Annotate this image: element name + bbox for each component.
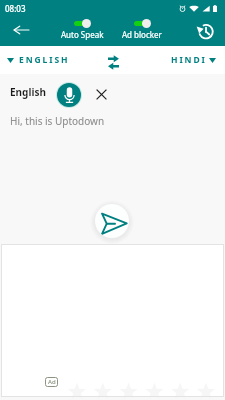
staticText: Auto Speak bbox=[61, 29, 104, 40]
button[interactable]: Speak bbox=[56, 82, 82, 108]
button[interactable]: Clear text bbox=[92, 85, 111, 104]
button[interactable]: ENGLISH bbox=[0, 50, 78, 70]
staticText: HINDI bbox=[171, 54, 207, 66]
button[interactable]: Translate bbox=[93, 202, 131, 240]
staticText: Ad bbox=[48, 378, 56, 386]
button[interactable]: History bbox=[190, 16, 218, 44]
button[interactable]: Ad blocker bbox=[122, 18, 162, 40]
button[interactable]: Back bbox=[8, 17, 34, 43]
staticText: Hi, this is Uptodown bbox=[10, 114, 105, 128]
button[interactable]: Auto Speak bbox=[61, 18, 104, 40]
staticText: ENGLISH bbox=[19, 54, 70, 66]
staticText: 08:03 bbox=[5, 3, 26, 14]
button[interactable]: HINDI bbox=[163, 50, 225, 70]
staticText: English bbox=[10, 85, 46, 99]
staticText: Ad blocker bbox=[122, 29, 162, 40]
button[interactable]: Swap languages bbox=[102, 49, 124, 71]
